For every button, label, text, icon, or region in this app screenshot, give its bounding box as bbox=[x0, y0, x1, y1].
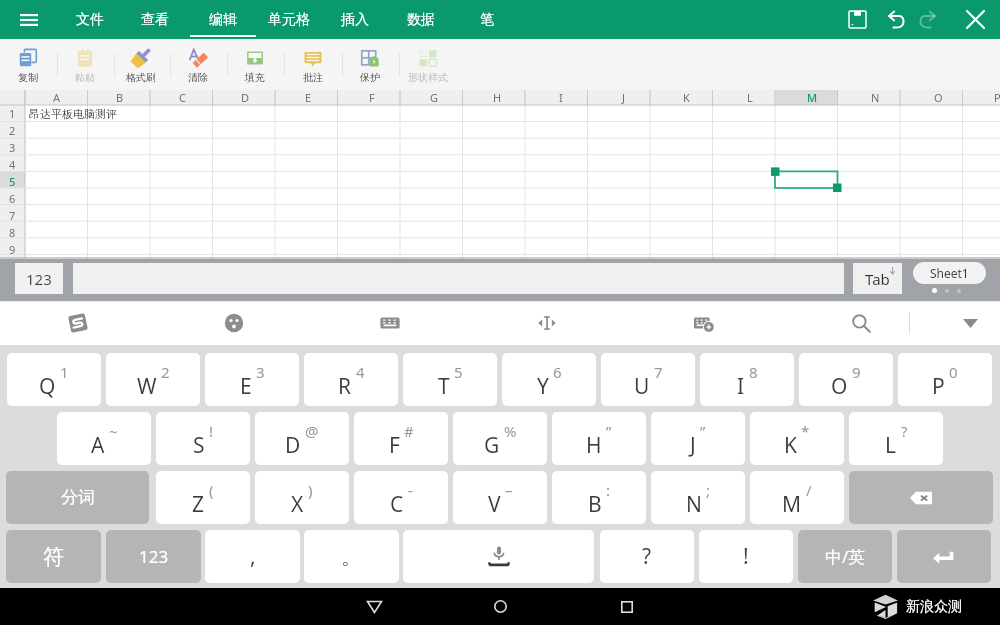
button[interactable]: I bbox=[700, 353, 794, 406]
button[interactable]: C bbox=[354, 471, 448, 524]
button[interactable]: W bbox=[106, 353, 200, 406]
button[interactable]: R bbox=[304, 353, 398, 406]
button[interactable]: 123 bbox=[15, 263, 63, 294]
staticText: ? bbox=[901, 421, 908, 441]
staticText: W bbox=[137, 372, 157, 401]
button[interactable]: Q bbox=[7, 353, 101, 406]
staticText: 保护 bbox=[360, 71, 380, 84]
button[interactable]: Redo bbox=[908, 0, 946, 39]
button[interactable]: H bbox=[552, 412, 646, 465]
staticText: % bbox=[504, 421, 517, 441]
button[interactable]: N bbox=[651, 471, 745, 524]
button[interactable]: O bbox=[799, 353, 893, 406]
staticText: 复制 bbox=[18, 71, 38, 84]
staticText: 9 bbox=[9, 242, 16, 257]
button[interactable]: Y bbox=[502, 353, 596, 406]
button[interactable]: Menu bbox=[0, 0, 58, 39]
button[interactable]: Tab bbox=[853, 263, 902, 294]
button[interactable]: E bbox=[205, 353, 299, 406]
staticText: J bbox=[622, 90, 626, 105]
button[interactable]: Undo bbox=[878, 0, 916, 39]
button[interactable]: Backspace bbox=[849, 471, 993, 524]
button[interactable]: 文件 bbox=[63, 0, 117, 39]
staticText: @ bbox=[305, 421, 319, 441]
staticText: 批注 bbox=[303, 71, 323, 84]
button[interactable]: Save bbox=[838, 0, 876, 39]
button[interactable]: 笔 bbox=[460, 0, 514, 39]
button[interactable]: 符 bbox=[6, 530, 101, 583]
button[interactable]: 插入 bbox=[328, 0, 382, 39]
button[interactable]: Z bbox=[156, 471, 250, 524]
staticText: C bbox=[390, 490, 404, 519]
button[interactable]: Close bbox=[954, 0, 996, 39]
button[interactable]: Input method bbox=[50, 301, 106, 345]
staticText: 中/英 bbox=[825, 545, 866, 568]
button[interactable]: 复制 bbox=[0, 39, 56, 90]
button[interactable]: D bbox=[255, 412, 349, 465]
button[interactable]: Sheet1 bbox=[913, 262, 986, 284]
staticText: Tab bbox=[865, 269, 890, 289]
staticText: L bbox=[747, 90, 753, 105]
button[interactable]: P bbox=[898, 353, 992, 406]
button[interactable]: X bbox=[255, 471, 349, 524]
button[interactable]: V bbox=[453, 471, 547, 524]
button[interactable]: ! bbox=[699, 530, 793, 583]
button[interactable]: 分词 bbox=[6, 471, 149, 524]
button[interactable]: Keyboard layout bbox=[362, 301, 418, 345]
button[interactable]: 填充 bbox=[227, 39, 283, 90]
button[interactable]: Recents bbox=[587, 588, 667, 625]
staticText: / bbox=[806, 480, 812, 500]
button[interactable]: Home bbox=[460, 588, 540, 625]
staticText: ” bbox=[606, 421, 612, 441]
button[interactable]: Voice input bbox=[403, 530, 594, 583]
button[interactable]: Enter bbox=[897, 530, 991, 583]
staticText: 清除 bbox=[188, 71, 208, 84]
button[interactable]: 保护 bbox=[342, 39, 398, 90]
button[interactable]: K bbox=[750, 412, 844, 465]
button[interactable]: Collapse keyboard bbox=[942, 301, 998, 345]
button[interactable]: Search bbox=[833, 301, 889, 345]
staticText: V bbox=[488, 490, 501, 519]
button[interactable]: J bbox=[651, 412, 745, 465]
button[interactable]: A bbox=[57, 412, 151, 465]
button[interactable]: 查看 bbox=[128, 0, 182, 39]
button[interactable]: 形状样式 bbox=[400, 39, 456, 90]
staticText: I bbox=[559, 90, 563, 105]
button[interactable]: 格式刷 bbox=[113, 39, 169, 90]
button[interactable]: 数据 bbox=[394, 0, 448, 39]
button[interactable]: Custom keyboard bbox=[676, 301, 732, 345]
button[interactable]: 123 bbox=[106, 530, 201, 583]
button[interactable]: S bbox=[156, 412, 250, 465]
button[interactable]: T bbox=[403, 353, 497, 406]
button[interactable]: F bbox=[354, 412, 448, 465]
staticText: 3 bbox=[256, 362, 265, 382]
button[interactable]: L bbox=[849, 412, 943, 465]
button[interactable]: 。 bbox=[304, 530, 399, 583]
staticText: 8 bbox=[749, 362, 758, 382]
staticText: M bbox=[807, 90, 818, 105]
button[interactable]: Emoji bbox=[206, 301, 262, 345]
staticText: 形状样式 bbox=[408, 71, 448, 84]
button[interactable]: ? bbox=[600, 530, 694, 583]
button[interactable]: 粘贴 bbox=[57, 39, 113, 90]
button[interactable]: B bbox=[552, 471, 646, 524]
button[interactable]: U bbox=[601, 353, 695, 406]
staticText: 123 bbox=[26, 269, 52, 289]
button[interactable]: G bbox=[453, 412, 547, 465]
button[interactable]: 单元格 bbox=[254, 0, 324, 39]
staticText: B bbox=[116, 90, 124, 105]
button[interactable]: 中/英 bbox=[798, 530, 892, 583]
button[interactable]: Move cursor bbox=[519, 301, 575, 345]
button[interactable]: 批注 bbox=[285, 39, 341, 90]
staticText: 5 bbox=[454, 362, 463, 382]
staticText: R bbox=[338, 372, 352, 401]
button[interactable]: M bbox=[750, 471, 844, 524]
button[interactable]: 清除 bbox=[170, 39, 226, 90]
staticText: N bbox=[871, 90, 880, 105]
staticText: 7 bbox=[654, 362, 663, 382]
button[interactable]: 编辑 bbox=[196, 0, 250, 39]
button[interactable]: Back bbox=[334, 588, 414, 625]
staticText: 2 bbox=[9, 123, 16, 138]
button[interactable]: , bbox=[205, 530, 300, 583]
